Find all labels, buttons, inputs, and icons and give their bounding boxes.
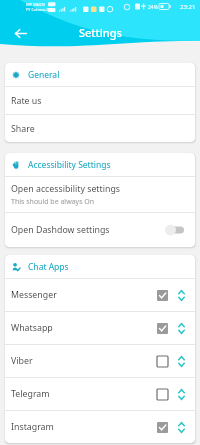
button[interactable]: Share — [5, 115, 195, 142]
staticText: Open accessibility settings — [11, 183, 121, 195]
button[interactable]: Viber — [5, 345, 195, 377]
button[interactable]: Telegram — [5, 378, 195, 410]
staticText: FY Celcom-Digi — [26, 7, 55, 12]
staticText: Telegram — [11, 388, 50, 400]
staticText: MY MAXIS — [26, 2, 46, 7]
button[interactable]: Reorder — [173, 386, 189, 402]
button[interactable]: Reorder — [173, 287, 189, 303]
button[interactable]: Rate us — [5, 87, 195, 114]
button[interactable]: Reorder — [173, 353, 189, 369]
staticText: Whatsapp — [11, 322, 53, 334]
staticText: Share — [11, 123, 35, 135]
staticText: Open Dashdow settings — [11, 224, 110, 236]
staticText: This should be always On — [11, 197, 95, 207]
button[interactable]: Open accessibility settings — [5, 177, 195, 212]
staticText: 24% — [148, 4, 158, 11]
button[interactable]: Enable — [154, 353, 170, 369]
staticText: General — [28, 69, 60, 81]
staticText: Accessibility Settings — [28, 159, 111, 171]
button[interactable]: Back — [10, 23, 30, 43]
staticText: Instagram — [11, 421, 54, 433]
staticText: Settings — [79, 25, 122, 40]
button[interactable]: Enable — [154, 419, 170, 435]
staticText: 23:21 — [180, 3, 196, 11]
button[interactable]: Enable — [154, 320, 170, 336]
button[interactable]: Enable — [154, 287, 170, 303]
button[interactable]: Reorder — [173, 320, 189, 336]
button[interactable]: Reorder — [173, 419, 189, 435]
button[interactable]: Toggle Dashdow settings — [165, 222, 185, 238]
button[interactable]: Whatsapp — [5, 312, 195, 344]
staticText: Messenger — [11, 289, 57, 301]
button[interactable]: Enable — [154, 386, 170, 402]
staticText: Chat Apps — [28, 261, 69, 273]
staticText: Rate us — [11, 95, 42, 107]
staticText: Viber — [11, 355, 33, 367]
button[interactable]: Messenger — [5, 279, 195, 311]
button[interactable]: Instagram — [5, 411, 195, 443]
button[interactable]: Open Dashdow settings — [5, 213, 195, 247]
